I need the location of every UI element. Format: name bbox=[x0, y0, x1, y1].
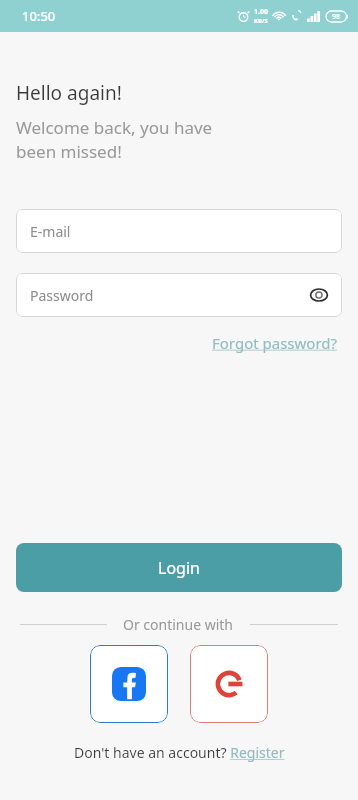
staticText: Hello again! bbox=[16, 80, 122, 106]
staticText: Welcome back, you have been missed! bbox=[16, 116, 213, 163]
button[interactable]: Forgot password? bbox=[208, 329, 342, 357]
button[interactable]: E-mail bbox=[16, 209, 342, 253]
staticText: Don't have an account? Register bbox=[74, 743, 285, 762]
button[interactable]: Continue with Facebook bbox=[90, 645, 168, 723]
staticText: 1.00 bbox=[254, 7, 268, 17]
button[interactable]: Don't have an account? Register bbox=[70, 741, 289, 764]
staticText: E-mail bbox=[30, 222, 71, 241]
staticText: 98 bbox=[332, 12, 341, 22]
button[interactable]: Password bbox=[16, 273, 342, 317]
staticText: 10:50 bbox=[22, 7, 56, 25]
staticText: Or continue with bbox=[123, 615, 234, 634]
staticText: Forgot password? bbox=[212, 333, 338, 353]
staticText: KB/S bbox=[254, 17, 268, 25]
button[interactable]: Show password bbox=[306, 282, 332, 308]
button[interactable]: Login bbox=[16, 543, 342, 592]
staticText: Login bbox=[158, 557, 200, 579]
button[interactable]: Continue with Google bbox=[190, 645, 268, 723]
staticText: Password bbox=[30, 286, 94, 305]
